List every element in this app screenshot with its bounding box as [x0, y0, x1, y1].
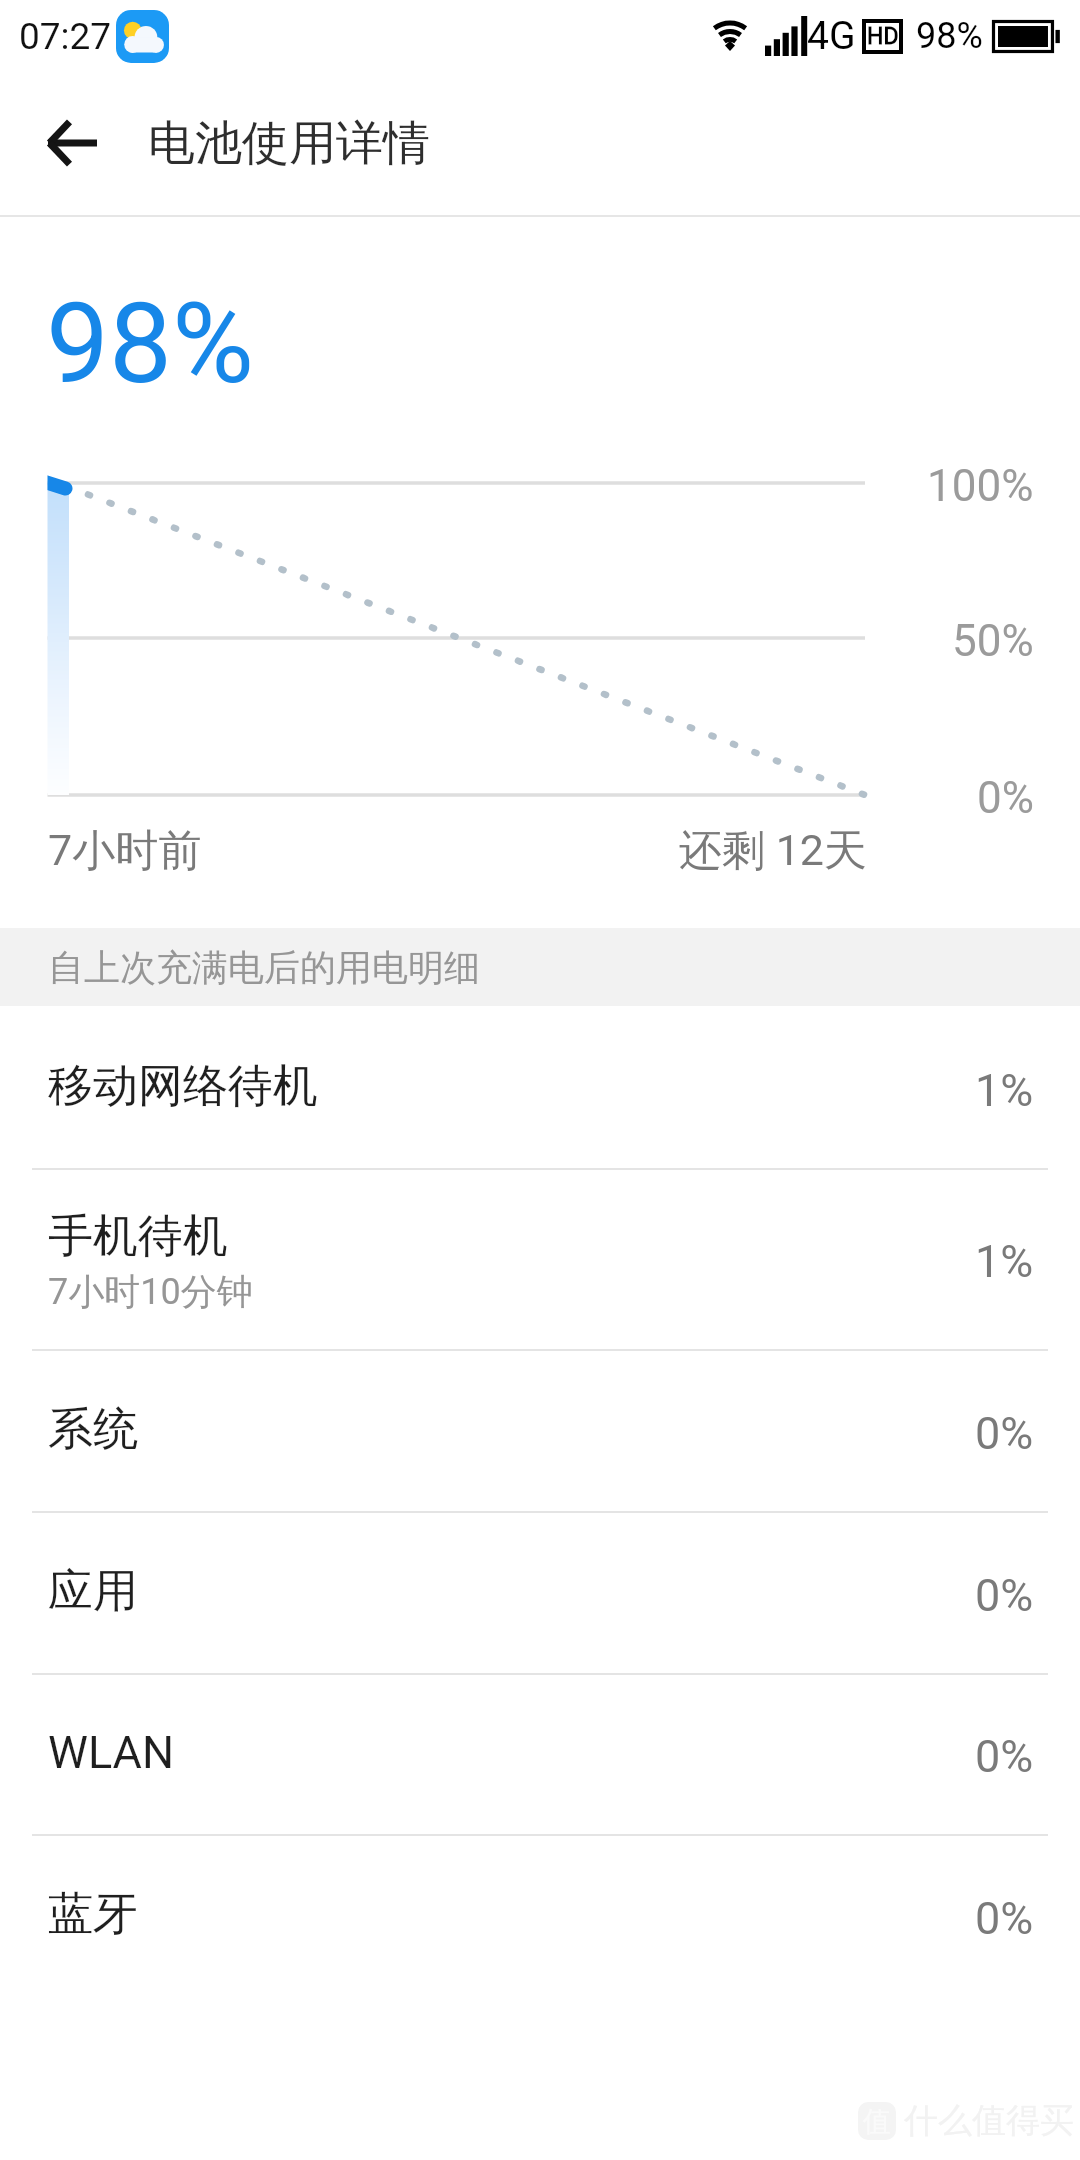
staticText: 还剩 12天: [679, 824, 867, 878]
staticText: 4G: [807, 13, 856, 59]
staticText: 100%: [927, 460, 1034, 512]
staticText: 0%: [975, 1407, 1034, 1460]
button[interactable]: 蓝牙: [0, 1834, 1080, 1996]
staticText: 0%: [977, 772, 1034, 824]
staticText: 98%: [46, 278, 254, 409]
staticText: 应用: [48, 1563, 138, 1620]
staticText: 1%: [975, 1064, 1034, 1117]
staticText: 自上次充满电后的用电明细: [48, 945, 480, 990]
button[interactable]: WLAN: [0, 1673, 1080, 1834]
staticText: 电池使用详情: [148, 114, 430, 173]
staticText: 07:27: [19, 15, 112, 58]
staticText: 0%: [975, 1569, 1034, 1622]
staticText: 98%: [916, 15, 983, 57]
button[interactable]: Back: [24, 95, 120, 191]
staticText: 什么值得买: [904, 2099, 1074, 2142]
staticText: 蓝牙: [48, 1886, 138, 1943]
staticText: HD: [867, 23, 899, 50]
staticText: 移动网络待机: [48, 1058, 318, 1115]
staticText: 系统: [48, 1401, 138, 1458]
staticText: 0%: [975, 1730, 1034, 1783]
staticText: 7小时10分钟: [48, 1269, 253, 1314]
staticText: 1%: [975, 1235, 1034, 1288]
staticText: 手机待机: [48, 1208, 228, 1265]
button[interactable]: 移动网络待机: [0, 1006, 1080, 1168]
staticText: 50%: [952, 615, 1034, 667]
button[interactable]: 系统: [0, 1349, 1080, 1511]
button[interactable]: 手机待机: [0, 1168, 1080, 1349]
button[interactable]: 应用: [0, 1511, 1080, 1673]
staticText: 7小时前: [48, 824, 202, 878]
staticText: 0%: [975, 1892, 1034, 1945]
staticText: WLAN: [48, 1726, 175, 1779]
